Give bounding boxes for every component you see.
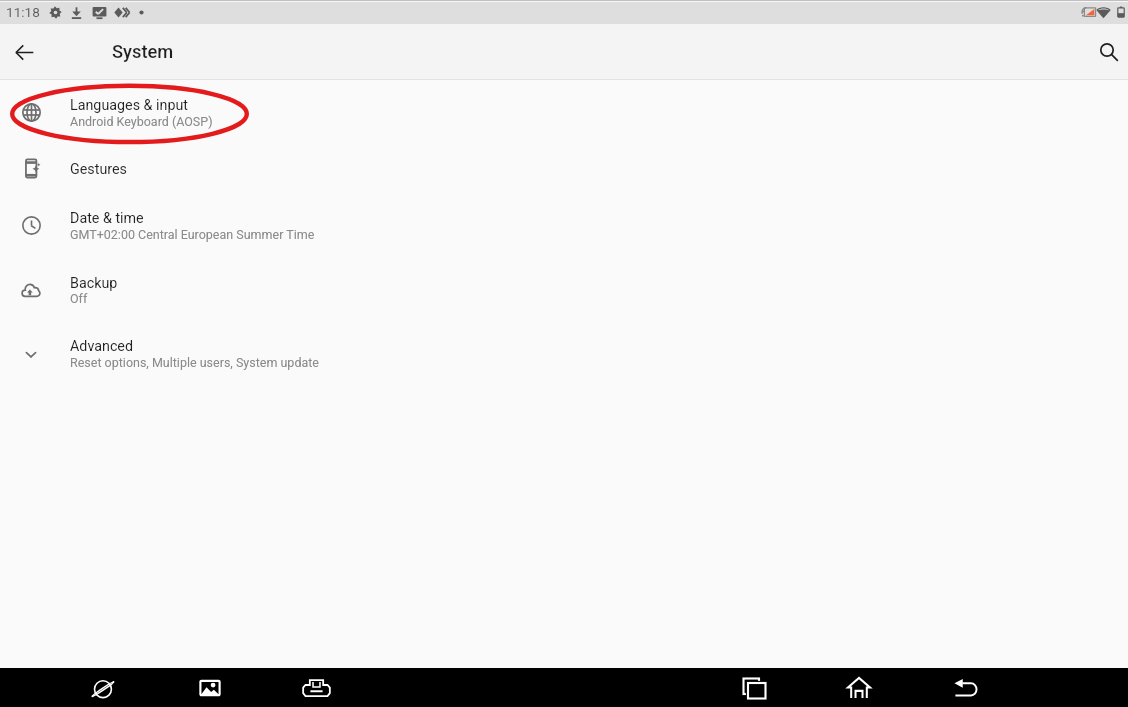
staticText: Reset options, Multiple users, System up… bbox=[70, 355, 319, 370]
button[interactable] bbox=[0, 257, 1128, 321]
staticText: System bbox=[112, 41, 174, 62]
button[interactable]: Home bbox=[841, 670, 877, 706]
button[interactable] bbox=[0, 193, 1128, 257]
staticText: Android Keyboard (AOSP) bbox=[70, 114, 213, 129]
staticText: Backup bbox=[70, 275, 118, 292]
button[interactable]: Back bbox=[947, 670, 983, 706]
staticText: 11:18 bbox=[6, 4, 40, 20]
button[interactable]: Navigate up bbox=[3, 31, 45, 73]
button[interactable] bbox=[0, 144, 1128, 193]
staticText: Gestures bbox=[70, 161, 127, 178]
staticText: Languages & input bbox=[70, 97, 188, 114]
button[interactable]: Gallery bbox=[192, 670, 228, 706]
staticText: Off bbox=[70, 291, 88, 306]
button[interactable]: Recent apps bbox=[736, 670, 772, 706]
staticText: Advanced bbox=[70, 338, 134, 355]
button[interactable]: VCI connector bbox=[298, 670, 334, 706]
staticText: Date & time bbox=[70, 210, 144, 227]
button[interactable]: Search bbox=[1088, 31, 1128, 73]
button[interactable] bbox=[0, 321, 1128, 385]
button[interactable]: Browser bbox=[86, 670, 122, 706]
button[interactable] bbox=[0, 81, 1128, 144]
staticText: GMT+02:00 Central European Summer Time bbox=[70, 227, 315, 242]
